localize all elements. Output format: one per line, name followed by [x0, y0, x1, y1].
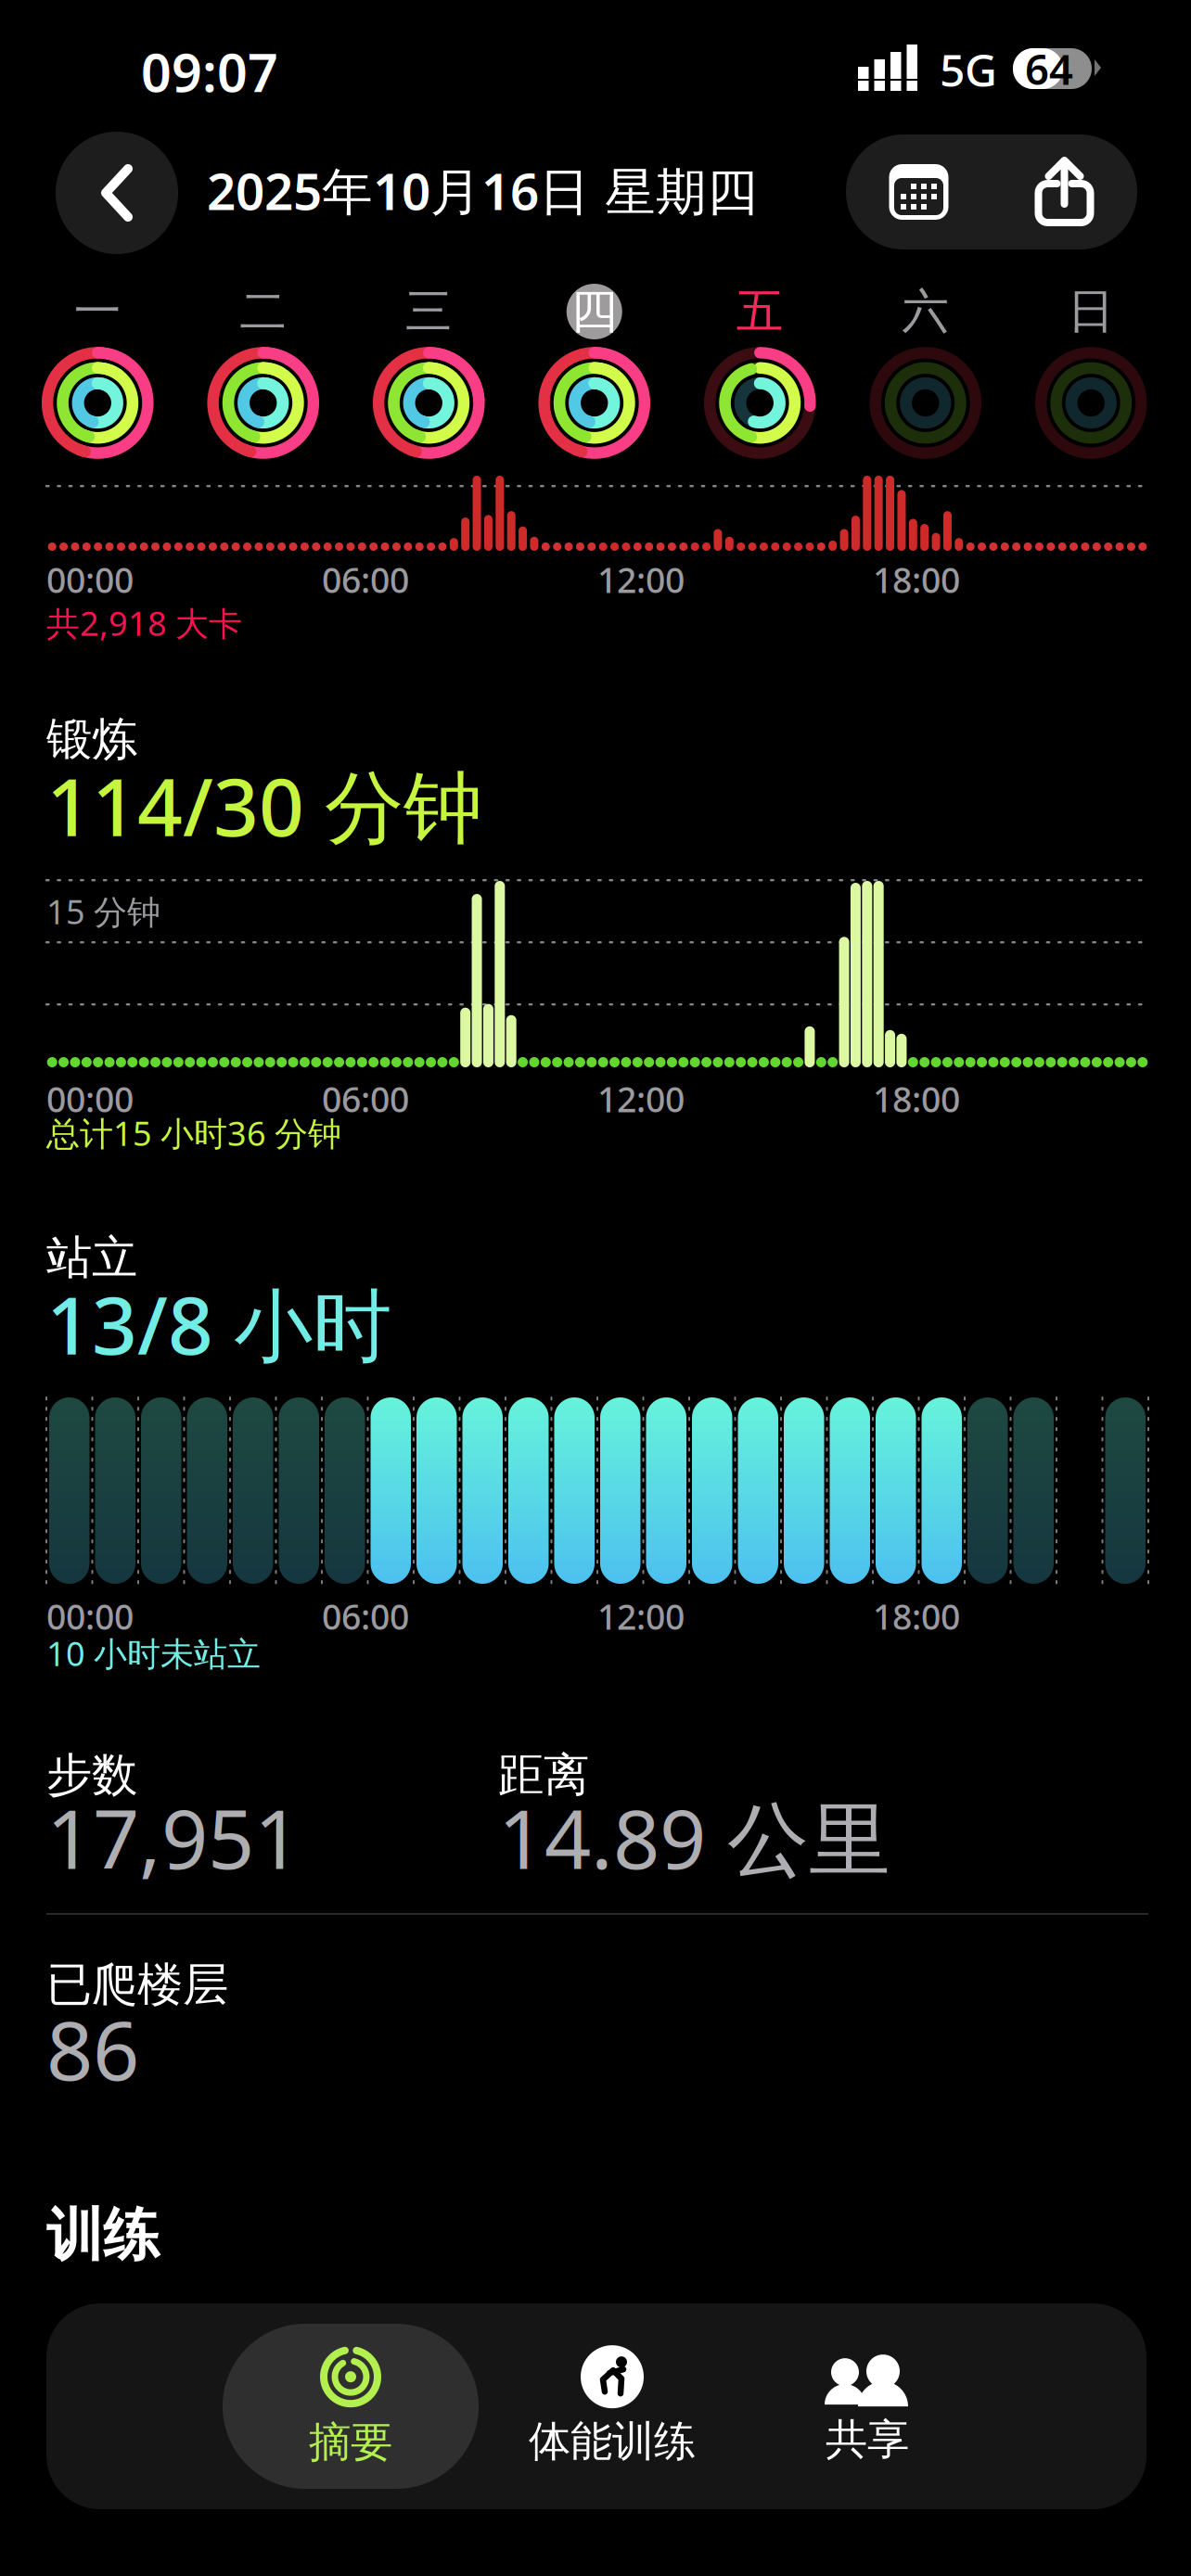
staticText: 17,951 — [46, 1783, 301, 1892]
staticText: 06:00 — [322, 1076, 409, 1122]
staticText: 14.89 公里 — [498, 1783, 890, 1892]
staticText: 2025年10月16日 星期四 — [207, 157, 758, 224]
staticText: 体能训练 — [529, 2416, 696, 2467]
staticText: 00:00 — [46, 557, 134, 603]
staticText: 总计15 小时36 分钟 — [46, 1111, 341, 1155]
staticText: 共2,918 大卡 — [46, 601, 242, 645]
staticText: 64 — [1025, 41, 1073, 97]
staticText: 站立 — [46, 1230, 137, 1286]
staticText: 18:00 — [873, 1076, 960, 1122]
staticText: 摘要 — [309, 2417, 392, 2468]
staticText: 15 分钟 — [46, 889, 160, 934]
button[interactable]: 返回 — [56, 132, 178, 254]
staticText: 18:00 — [873, 1593, 960, 1639]
button[interactable]: 分享 — [992, 134, 1137, 249]
staticText: 六 — [902, 283, 949, 340]
staticText: 09:07 — [141, 36, 278, 107]
staticText: 步数 — [46, 1747, 137, 1803]
staticText: 5G — [940, 40, 997, 99]
staticText: 已爬楼层 — [46, 1957, 228, 2013]
staticText: 三 — [405, 283, 452, 340]
staticText: 10 小时未站立 — [46, 1631, 261, 1675]
staticText: 距离 — [498, 1747, 589, 1803]
staticText: 日 — [1067, 283, 1115, 340]
staticText: 13/8 小时 — [46, 1271, 391, 1376]
staticText: 锻炼 — [46, 711, 137, 767]
staticText: 二 — [239, 283, 287, 340]
staticText: 00:00 — [46, 1076, 134, 1122]
staticText: 四 — [571, 283, 618, 340]
staticText: 训练 — [46, 2200, 160, 2270]
staticText: 06:00 — [322, 557, 409, 603]
button[interactable]: 摘要 — [223, 2324, 479, 2489]
staticText: 12:00 — [597, 1593, 685, 1639]
staticText: 一 — [74, 283, 121, 340]
button[interactable]: 体能训练 — [482, 2324, 742, 2489]
staticText: 12:00 — [597, 557, 685, 603]
staticText: 五 — [736, 283, 784, 340]
staticText: 12:00 — [597, 1076, 685, 1122]
button[interactable]: 日历 — [846, 134, 992, 249]
button[interactable]: 共享 — [751, 2324, 983, 2489]
staticText: 86 — [46, 1995, 139, 2103]
staticText: 00:00 — [46, 1593, 134, 1639]
staticText: 114/30 分钟 — [46, 753, 482, 858]
staticText: 18:00 — [873, 557, 960, 603]
staticText: 06:00 — [322, 1593, 409, 1639]
staticText: 共享 — [826, 2414, 909, 2466]
